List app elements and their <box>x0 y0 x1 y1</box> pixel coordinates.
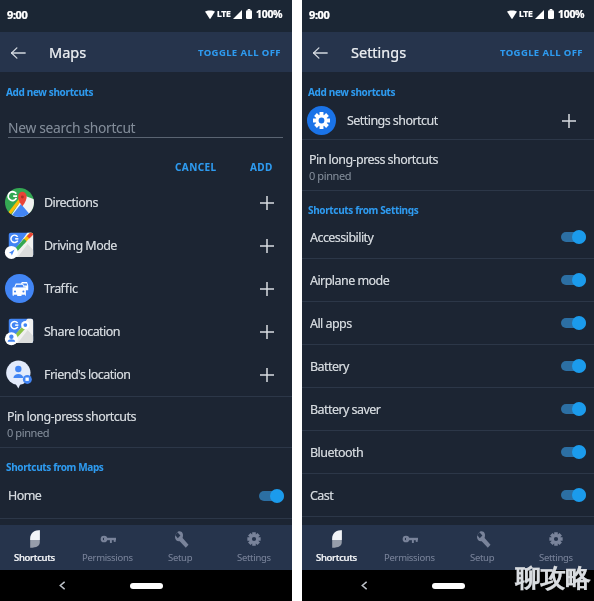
button[interactable]: TOGGLE ALL OFF <box>187 38 292 67</box>
staticText: New search shortcut <box>8 118 136 137</box>
staticText: Maps <box>49 42 87 62</box>
button[interactable]: Back <box>302 35 337 70</box>
staticText: 9:00 <box>309 7 330 22</box>
button[interactable]: Pin long-press shortcuts <box>302 140 594 190</box>
button[interactable]: Friend's location <box>0 353 292 396</box>
button[interactable]: Share location <box>0 310 292 353</box>
staticText: 聊攻略 <box>515 563 590 594</box>
button[interactable]: Add Driving Mode <box>252 231 282 261</box>
button[interactable]: Battery <box>302 345 594 387</box>
staticText: Pin long-press shortcuts <box>7 408 136 425</box>
staticText: 0 pinned <box>7 425 50 440</box>
staticText: Directions <box>44 194 98 211</box>
staticText: 100% <box>256 7 283 21</box>
staticText: Accessibility <box>310 229 374 246</box>
staticText: Settings shortcut <box>347 112 438 129</box>
staticText: Traffic <box>44 280 78 297</box>
staticText: Friend's location <box>44 366 131 383</box>
staticText: Permissions <box>82 551 133 564</box>
button[interactable]: Battery saver <box>302 388 594 430</box>
staticText: Add new shortcuts <box>308 85 396 99</box>
button[interactable]: Settings <box>519 525 592 570</box>
staticText: Battery <box>310 358 349 375</box>
button[interactable]: Settings shortcut <box>302 102 594 139</box>
staticText: Settings <box>539 551 573 564</box>
staticText: Airplane mode <box>310 272 390 289</box>
button[interactable]: Traffic <box>0 267 292 310</box>
staticText: Bluetooth <box>310 444 364 461</box>
button[interactable]: Setup <box>144 525 217 570</box>
button[interactable]: Accessibility <box>302 216 594 258</box>
button[interactable]: Back <box>0 35 35 70</box>
button[interactable]: Home <box>0 473 292 518</box>
staticText: Permissions <box>384 551 435 564</box>
button[interactable]: Shortcuts <box>300 525 373 570</box>
button[interactable]: Add Share location <box>252 317 282 347</box>
button[interactable]: All apps <box>302 302 594 344</box>
staticText: CANCEL <box>175 160 217 174</box>
button[interactable]: Cast <box>302 474 594 516</box>
staticText: TOGGLE ALL OFF <box>198 46 281 59</box>
button[interactable]: Add Settings shortcut <box>554 106 584 136</box>
staticText: Add new shortcuts <box>6 85 94 99</box>
staticText: Share location <box>44 323 120 340</box>
staticText: LTE <box>519 8 533 20</box>
staticText: 0 pinned <box>309 168 352 183</box>
button[interactable]: Shortcuts <box>0 525 71 570</box>
button[interactable]: Permissions <box>71 525 144 570</box>
staticText: Cast <box>310 487 334 504</box>
button[interactable]: Add Directions <box>252 188 282 218</box>
button[interactable]: Permissions <box>373 525 446 570</box>
button[interactable]: CANCEL <box>169 156 223 178</box>
staticText: Shortcuts <box>316 551 357 564</box>
staticText: LTE <box>217 8 231 20</box>
staticText: Shortcuts from Maps <box>6 460 104 473</box>
button[interactable]: Directions <box>0 181 292 224</box>
button[interactable]: Bluetooth <box>302 431 594 473</box>
staticText: Home <box>8 487 42 504</box>
staticText: TOGGLE ALL OFF <box>500 46 583 59</box>
staticText: Setup <box>168 551 193 564</box>
button[interactable]: TOGGLE ALL OFF <box>489 38 594 67</box>
staticText: Driving Mode <box>44 237 117 254</box>
staticText: 100% <box>558 7 585 21</box>
button[interactable]: Setup <box>446 525 519 570</box>
staticText: All apps <box>310 315 352 332</box>
staticText: 9:00 <box>7 7 28 22</box>
button[interactable]: Add Friend's location <box>252 360 282 390</box>
button[interactable]: ADD <box>244 156 279 178</box>
staticText: Shortcuts <box>14 551 55 564</box>
button[interactable]: Settings <box>217 525 290 570</box>
staticText: Settings <box>237 551 271 564</box>
button[interactable]: Pin long-press shortcuts <box>0 397 292 447</box>
button[interactable]: Driving Mode <box>0 224 292 267</box>
button[interactable]: Airplane mode <box>302 259 594 301</box>
staticText: Shortcuts from Settings <box>308 203 419 216</box>
button[interactable]: Add Traffic <box>252 274 282 304</box>
staticText: Setup <box>470 551 495 564</box>
staticText: Battery saver <box>310 401 381 418</box>
staticText: Settings <box>351 42 407 62</box>
staticText: ADD <box>250 160 273 174</box>
staticText: Pin long-press shortcuts <box>309 151 438 168</box>
